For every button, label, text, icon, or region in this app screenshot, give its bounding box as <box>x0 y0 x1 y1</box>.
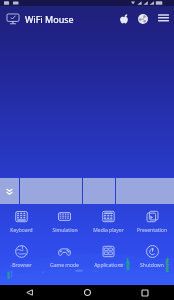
button[interactable]: Mac <box>114 6 133 31</box>
button[interactable]: Home <box>58 285 116 300</box>
button[interactable]: Media player <box>86 204 130 239</box>
staticText: Media player <box>93 227 124 234</box>
button[interactable]: Simulation <box>43 204 86 239</box>
button[interactable]: Connection status <box>0 6 25 31</box>
staticText: Simulation <box>52 227 78 234</box>
button[interactable]: Recents <box>116 285 174 300</box>
button[interactable]: Presentation <box>130 204 174 239</box>
button[interactable]: Linux <box>133 6 152 31</box>
staticText: Game mode <box>50 262 79 269</box>
staticText: Presentation <box>137 227 167 234</box>
button[interactable]: Applications <box>86 239 130 274</box>
staticText: Shutdown <box>140 262 164 269</box>
button[interactable]: Keyboard <box>0 204 43 239</box>
button[interactable]: Shutdown <box>130 239 174 274</box>
button[interactable]: Browser <box>0 239 43 274</box>
staticText: Applications <box>94 262 123 269</box>
button[interactable]: Game mode <box>43 239 86 274</box>
staticText: Keyboard <box>10 227 33 234</box>
button[interactable]: Back <box>0 285 58 300</box>
staticText: Browser <box>12 262 32 269</box>
button[interactable]: Menu <box>152 6 174 31</box>
button[interactable]: Show more <box>0 178 19 204</box>
staticText: WiFi Mouse <box>25 13 74 25</box>
